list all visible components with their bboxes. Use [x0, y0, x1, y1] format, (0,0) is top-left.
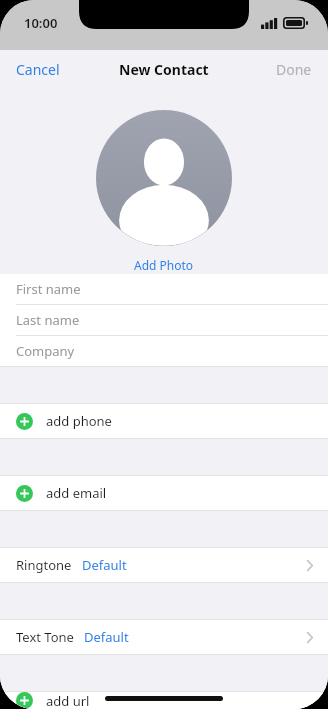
staticText: Cancel [16, 60, 60, 79]
button[interactable]: Done [260, 54, 328, 85]
button[interactable]: Ringtone [0, 548, 328, 582]
button[interactable]: First name [0, 274, 328, 304]
button[interactable]: add url [0, 692, 328, 709]
button[interactable]: Add Photo [124, 255, 204, 274]
staticText: Text Tone [16, 628, 74, 646]
staticText: First name [16, 280, 81, 298]
staticText: add url [46, 692, 90, 709]
staticText: Add Photo [134, 257, 194, 272]
button[interactable]: Text Tone [0, 620, 328, 654]
staticText: add phone [46, 412, 112, 430]
staticText: Company [16, 342, 75, 360]
button[interactable]: add phone [0, 404, 328, 438]
staticText: Default [84, 628, 129, 646]
button[interactable]: Last name [0, 305, 328, 335]
staticText: add email [46, 484, 107, 502]
staticText: 10:00 [24, 14, 58, 32]
button[interactable]: Cancel [0, 54, 76, 85]
button[interactable]: Company [0, 336, 328, 366]
staticText: New Contact [119, 60, 209, 79]
staticText: Default [82, 556, 127, 574]
staticText: Done [276, 60, 312, 79]
button[interactable]: Add Photo [96, 110, 232, 246]
button[interactable]: add email [0, 476, 328, 510]
staticText: Last name [16, 311, 80, 329]
staticText: Ringtone [16, 556, 72, 574]
